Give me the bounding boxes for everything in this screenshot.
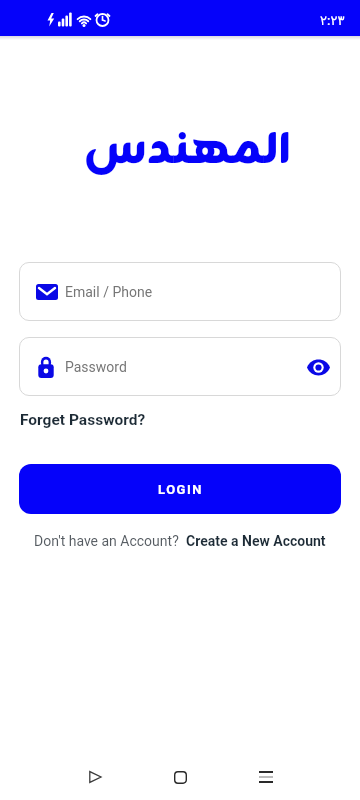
button[interactable]: Forget Password? <box>20 411 146 429</box>
button[interactable] <box>303 352 333 382</box>
button[interactable]: Password <box>19 337 341 396</box>
staticText: المهندس <box>84 114 291 178</box>
staticText: Don't have an Account? <box>34 533 179 549</box>
staticText: Password <box>65 359 303 375</box>
staticText: Create a New Account <box>186 533 326 549</box>
staticText: Forget Password? <box>20 411 146 429</box>
button[interactable] <box>160 757 200 797</box>
staticText: Email / Phone <box>65 284 153 300</box>
staticText: LOGIN <box>158 482 203 497</box>
button[interactable] <box>75 757 115 797</box>
button[interactable]: LOGIN <box>19 464 341 514</box>
button[interactable]: Email / Phone <box>19 262 341 321</box>
button[interactable]: Create a New Account <box>186 533 326 549</box>
button[interactable] <box>246 757 286 797</box>
staticText: ٢:٢٣ <box>320 13 345 28</box>
